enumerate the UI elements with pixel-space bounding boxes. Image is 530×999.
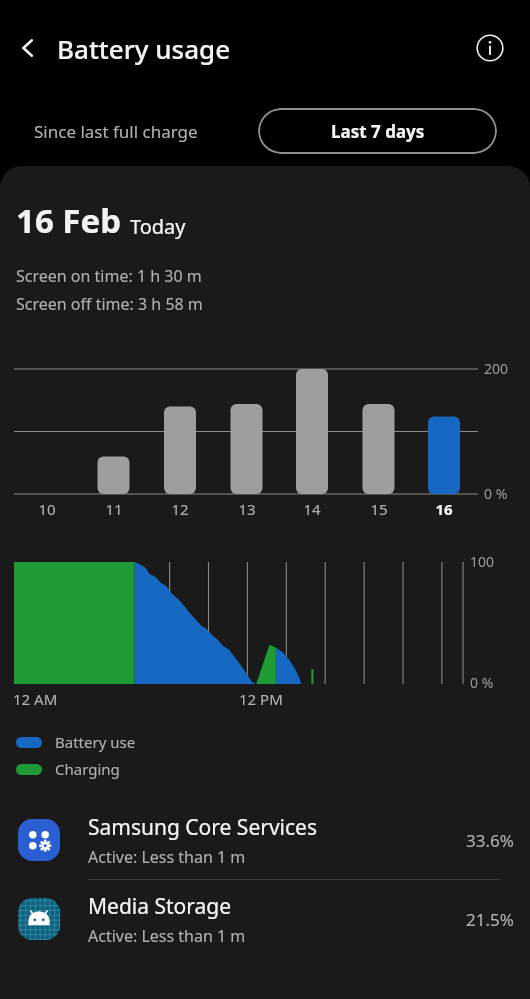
staticText: 33.6% <box>466 829 514 852</box>
staticText: 21.5% <box>466 908 514 931</box>
staticText: Battery use <box>55 732 136 752</box>
staticText: 15 <box>359 499 399 519</box>
staticText: 12 <box>160 499 200 519</box>
staticText: Charging <box>55 759 120 779</box>
button[interactable]: Information <box>468 26 512 70</box>
button[interactable]: Samsung Core Services <box>0 801 530 879</box>
staticText: 16 Feb <box>16 198 122 243</box>
staticText: 16 <box>424 499 464 519</box>
staticText: 0 % <box>484 484 508 503</box>
staticText: 100 <box>470 552 495 571</box>
button[interactable]: Back <box>4 24 52 72</box>
staticText: Since last full charge <box>34 120 198 143</box>
staticText: Battery usage <box>57 31 231 66</box>
staticText: Screen off time: 3 h 58 m <box>16 293 203 315</box>
staticText: Today <box>130 213 186 240</box>
button[interactable]: Last 7 days <box>258 108 497 154</box>
staticText: 200 <box>484 359 509 378</box>
staticText: 10 <box>27 499 67 519</box>
staticText: Screen on time: 1 h 30 m <box>16 265 202 287</box>
staticText: Active: Less than 1 m <box>88 925 246 947</box>
button[interactable]: Since last full charge <box>14 110 218 153</box>
staticText: Last 7 days <box>331 120 425 143</box>
staticText: Media Storage <box>88 892 232 921</box>
staticText: Active: Less than 1 m <box>88 846 246 868</box>
staticText: 0 % <box>470 673 494 692</box>
staticText: 12 PM <box>239 689 283 709</box>
staticText: 14 <box>292 499 332 519</box>
staticText: 11 <box>94 499 134 519</box>
staticText: 13 <box>227 499 267 519</box>
button[interactable]: Media Storage <box>0 880 530 958</box>
staticText: 12 AM <box>13 689 58 709</box>
staticText: Samsung Core Services <box>88 813 317 842</box>
